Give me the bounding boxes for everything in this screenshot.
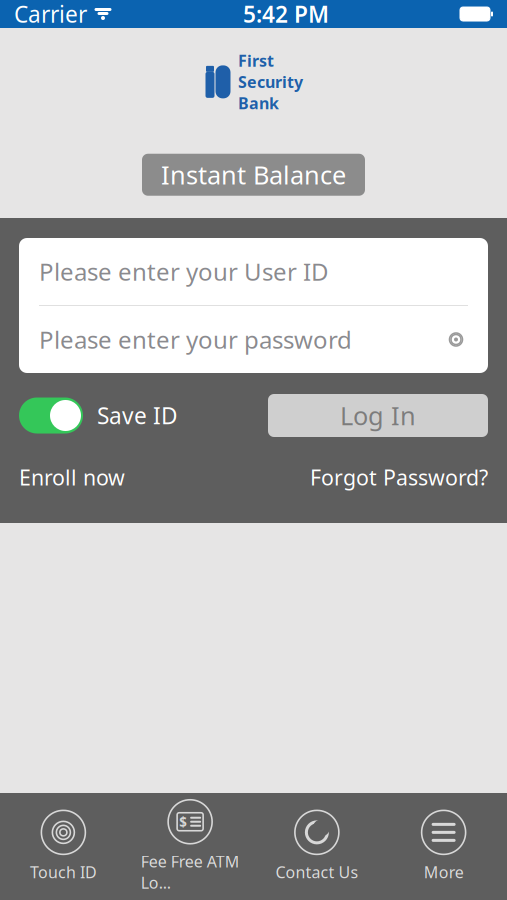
- staticText: Bank: [238, 92, 279, 114]
- staticText: Log In: [340, 399, 416, 432]
- staticText: Please enter your User ID: [39, 256, 329, 287]
- button[interactable]: Enroll now: [19, 463, 125, 491]
- staticText: 5:42 PM: [243, 0, 329, 29]
- staticText: Contact Us: [275, 861, 358, 883]
- button[interactable]: Please enter your password: [19, 306, 488, 373]
- staticText: Touch ID: [30, 861, 97, 883]
- staticText: Carrier: [14, 0, 87, 29]
- staticText: Security: [238, 71, 303, 92]
- button[interactable]: Contact Us: [253, 793, 380, 900]
- button[interactable]: Please enter your User ID: [19, 238, 488, 305]
- staticText: Please enter your password: [39, 324, 352, 355]
- staticText: Forgot Password?: [310, 463, 488, 491]
- staticText: More: [424, 861, 464, 883]
- staticText: Enroll now: [19, 463, 125, 491]
- button[interactable]: $: [127, 793, 254, 900]
- staticText: First: [238, 50, 274, 71]
- staticText: Save ID: [97, 400, 178, 430]
- button[interactable]: Touch ID: [0, 793, 127, 900]
- button[interactable]: Save ID: [19, 397, 178, 433]
- button[interactable]: Forgot Password?: [310, 463, 488, 491]
- button[interactable]: More: [380, 793, 507, 900]
- staticText: Instant Balance: [161, 158, 346, 191]
- staticText: Fee Free ATM Lo...: [141, 851, 240, 893]
- button[interactable]: Log In: [268, 394, 488, 437]
- button[interactable]: Instant Balance: [142, 154, 365, 196]
- staticText: $: [179, 813, 187, 831]
